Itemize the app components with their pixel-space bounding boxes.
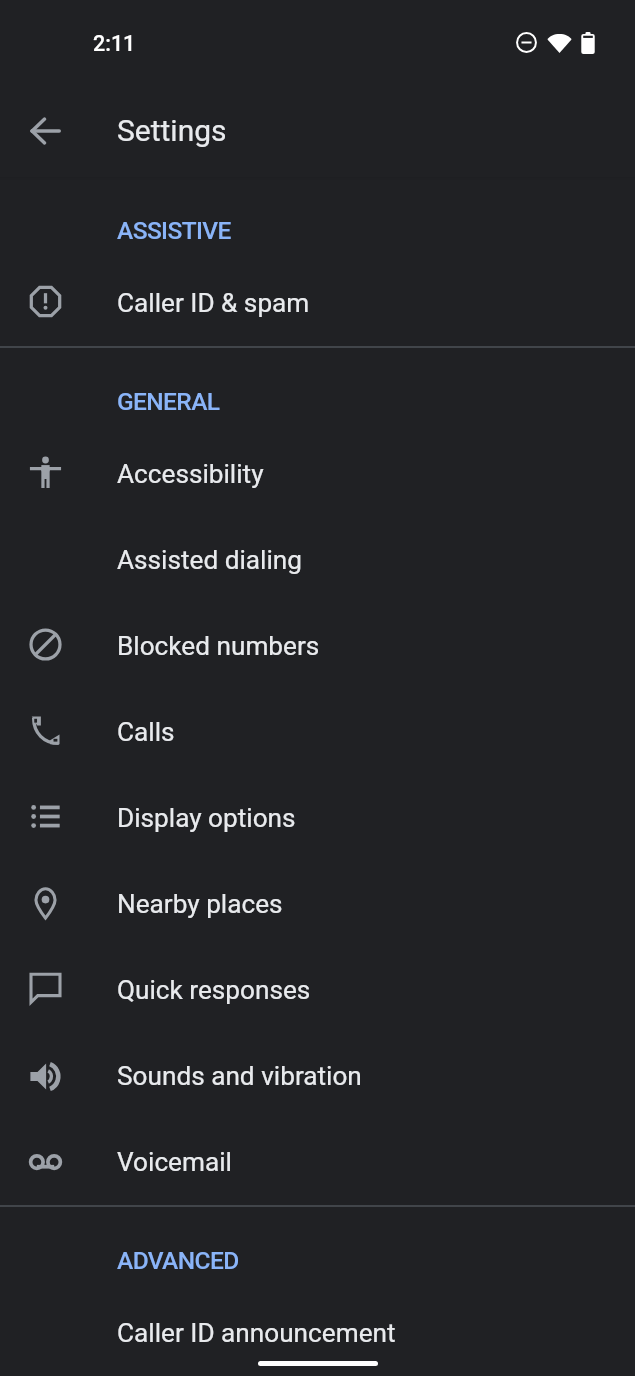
staticText: Sounds and vibration [117, 1061, 362, 1092]
staticText: Blocked numbers [117, 631, 320, 662]
button[interactable]: Caller ID & spam [0, 260, 635, 346]
button[interactable]: Quick responses [0, 947, 635, 1033]
staticText: Settings [117, 113, 227, 148]
button[interactable]: Accessibility [0, 431, 635, 517]
staticText: Assisted dialing [117, 545, 303, 576]
staticText: Display options [117, 803, 296, 834]
staticText: Caller ID announcement [117, 1318, 396, 1349]
staticText: Voicemail [117, 1147, 232, 1178]
staticText: ADVANCED [117, 1246, 239, 1275]
button[interactable]: Back [0, 84, 90, 177]
button[interactable]: Caller ID announcement [0, 1290, 635, 1376]
button[interactable]: Calls [0, 689, 635, 775]
staticText: Calls [117, 717, 175, 748]
staticText: Caller ID & spam [117, 288, 310, 319]
button[interactable]: Nearby places [0, 861, 635, 947]
staticText: ASSISTIVE [117, 216, 231, 245]
button[interactable]: Assisted dialing [0, 517, 635, 603]
staticText: GENERAL [117, 387, 220, 416]
button[interactable]: Blocked numbers [0, 603, 635, 689]
staticText: Quick responses [117, 975, 311, 1006]
button[interactable]: Voicemail [0, 1119, 635, 1205]
button[interactable]: Sounds and vibration [0, 1033, 635, 1119]
staticText: Nearby places [117, 889, 283, 920]
staticText: 2:11 [93, 31, 136, 56]
staticText: Accessibility [117, 459, 264, 490]
button[interactable]: Display options [0, 775, 635, 861]
